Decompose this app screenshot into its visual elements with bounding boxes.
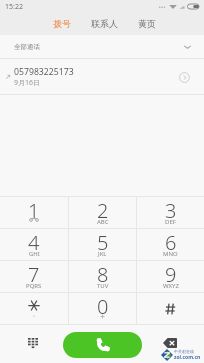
- button[interactable]: 8: [69, 261, 136, 292]
- button[interactable]: 黄页: [129, 14, 164, 32]
- staticText: PQRS: [26, 282, 42, 290]
- staticText: 全部通话: [14, 43, 40, 51]
- button[interactable]: 9: [137, 261, 204, 292]
- button[interactable]: 5: [69, 229, 136, 260]
- staticText: 6: [165, 229, 177, 256]
- staticText: 0: [97, 293, 109, 320]
- button[interactable]: Delete: [158, 331, 182, 355]
- staticText: 8: [97, 261, 109, 288]
- staticText: zol.com.cn: [174, 354, 201, 361]
- staticText: 9: [165, 261, 177, 288]
- staticText: 7: [28, 261, 40, 288]
- button[interactable]: Call details: [179, 72, 190, 83]
- staticText: 057983225173: [14, 66, 74, 78]
- staticText: GHI: [29, 250, 40, 258]
- button[interactable]: 6: [137, 229, 204, 260]
- staticText: 中关村在线: [174, 349, 194, 354]
- staticText: 黄页: [138, 18, 156, 29]
- button[interactable]: [0, 293, 68, 324]
- staticText: 拨号: [53, 18, 71, 29]
- staticText: 15:22: [5, 2, 23, 12]
- button[interactable]: 4: [0, 229, 68, 260]
- button[interactable]: 联系人: [79, 14, 129, 32]
- staticText: 3: [165, 197, 177, 224]
- staticText: 联系人: [91, 18, 118, 29]
- staticText: 9月16日: [14, 78, 41, 88]
- button[interactable]: 057983225173: [0, 59, 204, 95]
- button[interactable]: Keypad: [21, 331, 45, 355]
- button[interactable]: Call: [63, 332, 142, 358]
- button[interactable]: 1: [0, 197, 68, 228]
- staticText: WXYZ: [163, 282, 179, 290]
- staticText: 1: [28, 197, 40, 224]
- staticText: ABC: [97, 218, 109, 226]
- staticText: MNO: [163, 250, 178, 258]
- button[interactable]: 全部通话: [0, 35, 204, 59]
- button[interactable]: [137, 293, 204, 324]
- button[interactable]: 2: [69, 197, 136, 228]
- staticText: 2: [97, 197, 109, 224]
- staticText: DEF: [165, 218, 176, 226]
- button[interactable]: 0: [69, 293, 136, 324]
- button[interactable]: 拨号: [44, 14, 79, 32]
- staticText: TUV: [97, 282, 109, 290]
- staticText: 4: [28, 229, 40, 256]
- staticText: 5: [97, 229, 109, 256]
- button[interactable]: 3: [137, 197, 204, 228]
- button[interactable]: 7: [0, 261, 68, 292]
- staticText: JKL: [98, 250, 107, 258]
